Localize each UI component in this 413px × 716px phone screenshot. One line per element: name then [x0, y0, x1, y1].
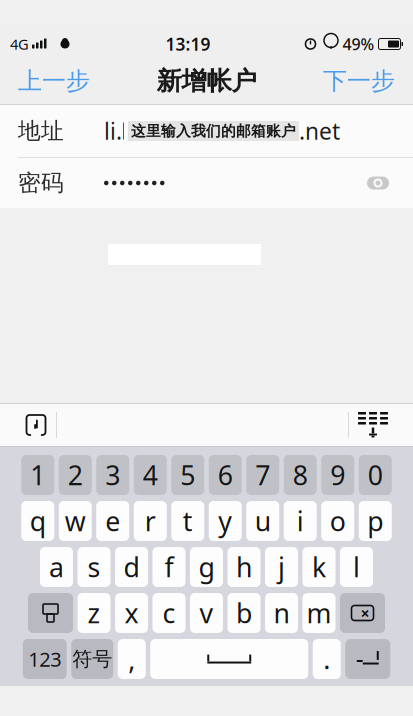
staticText: a: [49, 549, 64, 585]
staticText: 4G: [10, 34, 29, 54]
button[interactable]: f: [152, 547, 185, 587]
staticText: o: [330, 503, 346, 539]
staticText: 8: [293, 457, 308, 493]
button[interactable]: 2: [59, 455, 92, 495]
button[interactable]: u: [246, 501, 279, 541]
staticText: i: [297, 503, 304, 539]
button[interactable]: 符号: [71, 639, 113, 679]
button[interactable]: 6: [209, 455, 242, 495]
button[interactable]: c: [152, 593, 185, 633]
button[interactable]: z: [77, 593, 110, 633]
button[interactable]: 安全: [16, 404, 56, 446]
staticText: x: [124, 595, 138, 631]
button[interactable]: t: [171, 501, 204, 541]
staticText: 49%: [342, 33, 374, 55]
staticText: q: [30, 503, 46, 539]
staticText: 下一步: [323, 66, 395, 96]
staticText: .net: [299, 116, 340, 146]
staticText: t: [183, 503, 193, 539]
button[interactable]: Shift: [28, 593, 73, 633]
staticText: k: [312, 549, 326, 585]
button[interactable]: 换行: [345, 639, 390, 679]
button[interactable]: 5: [171, 455, 204, 495]
button[interactable]: 1: [21, 455, 54, 495]
button[interactable]: d: [115, 547, 148, 587]
staticText: p: [367, 503, 383, 539]
button[interactable]: 4: [134, 455, 167, 495]
button[interactable]: 7: [246, 455, 279, 495]
button[interactable]: x: [115, 593, 148, 633]
staticText: u: [255, 503, 271, 539]
button[interactable]: l: [340, 547, 373, 587]
staticText: j: [278, 549, 285, 585]
staticText: 6: [218, 457, 233, 493]
staticText: n: [273, 595, 289, 631]
staticText: li.: [104, 116, 122, 146]
button[interactable]: j: [265, 547, 298, 587]
button[interactable]: q: [21, 501, 54, 541]
staticText: d: [123, 549, 139, 585]
button[interactable]: ,: [118, 639, 146, 679]
staticText: 新增帐户: [156, 65, 256, 96]
button[interactable]: 8: [284, 455, 317, 495]
button[interactable]: i: [284, 501, 317, 541]
button[interactable]: k: [302, 547, 335, 587]
staticText: f: [164, 549, 173, 585]
button[interactable]: v: [190, 593, 223, 633]
staticText: r: [145, 503, 156, 539]
staticText: z: [87, 595, 100, 631]
button[interactable]: 上一步: [4, 58, 104, 104]
button[interactable]: o: [321, 501, 354, 541]
staticText: .: [323, 641, 330, 677]
staticText: l: [353, 549, 360, 585]
button[interactable]: 删除: [340, 593, 385, 633]
button[interactable]: s: [77, 547, 110, 587]
staticText: 地址: [18, 117, 64, 145]
staticText: e: [105, 503, 120, 539]
staticText: ×: [360, 602, 369, 624]
button[interactable]: 收起键盘: [349, 404, 397, 446]
staticText: 3: [105, 457, 120, 493]
staticText: s: [87, 549, 100, 585]
staticText: 上一步: [18, 66, 90, 96]
button[interactable]: 0: [359, 455, 392, 495]
button[interactable]: n: [265, 593, 298, 633]
button[interactable]: 下一步: [309, 58, 409, 104]
button[interactable]: y: [209, 501, 242, 541]
button[interactable]: h: [227, 547, 260, 587]
staticText: h: [236, 549, 252, 585]
staticText: 这里输入我们的邮箱账户: [131, 122, 296, 140]
staticText: 2: [68, 457, 83, 493]
staticText: 0: [368, 457, 383, 493]
button[interactable]: 3: [96, 455, 129, 495]
button[interactable]: w: [59, 501, 92, 541]
staticText: 4: [143, 457, 158, 493]
button[interactable]: m: [302, 593, 335, 633]
button[interactable]: 显示密码: [361, 166, 395, 200]
button[interactable]: g: [190, 547, 223, 587]
staticText: w: [65, 503, 86, 539]
staticText: 5: [180, 457, 195, 493]
staticText: 13:19: [165, 32, 210, 55]
staticText: 1: [30, 457, 45, 493]
button[interactable]: p: [359, 501, 392, 541]
staticText: 123: [28, 646, 61, 672]
button[interactable]: b: [227, 593, 260, 633]
button[interactable]: e: [96, 501, 129, 541]
staticText: 符号: [72, 647, 112, 671]
staticText: v: [199, 595, 213, 631]
staticText: c: [162, 595, 175, 631]
button[interactable]: 空格: [150, 639, 308, 679]
staticText: m: [306, 595, 331, 631]
button[interactable]: a: [40, 547, 73, 587]
button[interactable]: 123: [23, 639, 67, 679]
button[interactable]: r: [134, 501, 167, 541]
staticText: y: [218, 503, 232, 539]
button[interactable]: .: [313, 639, 341, 679]
staticText: ,: [128, 641, 135, 677]
staticText: 9: [330, 457, 345, 493]
staticText: 密码: [18, 169, 64, 197]
staticText: 7: [255, 457, 270, 493]
button[interactable]: 9: [321, 455, 354, 495]
staticText: g: [198, 549, 214, 585]
